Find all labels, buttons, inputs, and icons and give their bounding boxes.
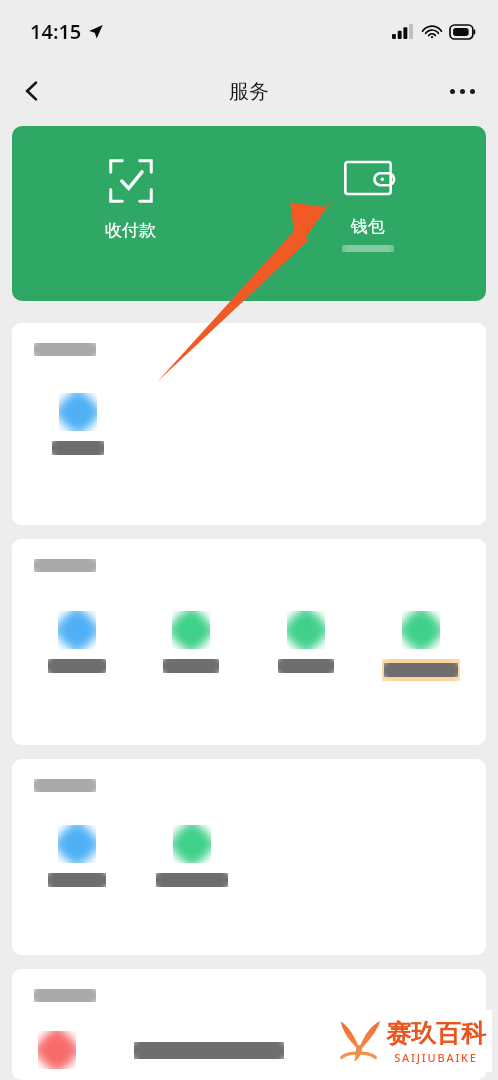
button[interactable] <box>38 1031 486 1069</box>
staticText: 收付款 <box>105 220 156 241</box>
button[interactable] <box>134 611 248 673</box>
staticText: SAIJIUBAIKE <box>394 1050 478 1065</box>
button[interactable]: 收付款 <box>12 126 249 301</box>
button[interactable] <box>134 825 249 887</box>
staticText: 14:15 <box>30 18 82 45</box>
button[interactable]: Back <box>8 67 56 115</box>
button[interactable] <box>20 825 134 887</box>
staticText: 钱包 <box>351 216 385 237</box>
button[interactable]: More options <box>438 67 486 115</box>
button[interactable] <box>363 611 478 681</box>
button[interactable] <box>20 393 136 455</box>
button[interactable] <box>20 611 134 673</box>
button[interactable]: 钱包 <box>249 126 486 301</box>
staticText: 赛玖百科 <box>386 1018 486 1049</box>
staticText: 服务 <box>229 79 269 104</box>
button[interactable] <box>248 611 363 673</box>
